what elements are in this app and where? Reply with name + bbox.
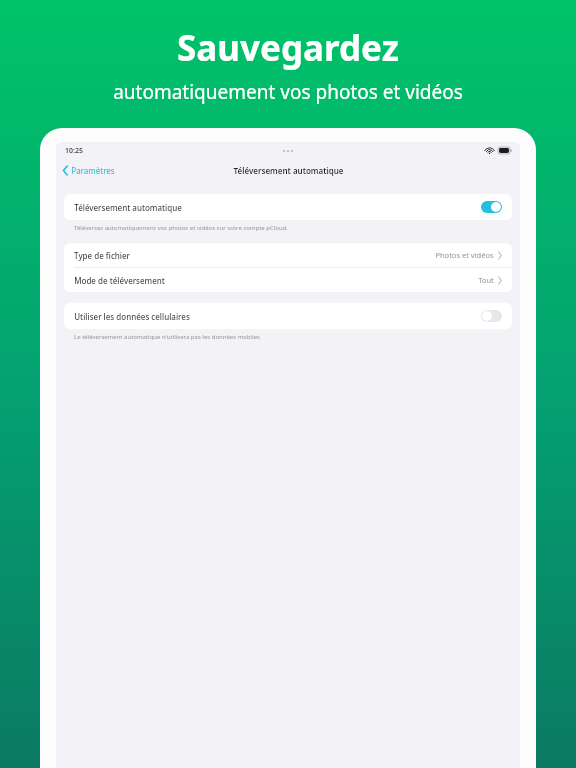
- staticText: Téléversez automatiquement vos photos et…: [74, 224, 288, 232]
- button[interactable]: Activé: [481, 201, 502, 213]
- staticText: Téléversement automatique: [74, 202, 182, 213]
- staticText: Téléversement automatique: [233, 165, 344, 176]
- staticText: Paramètres: [71, 165, 115, 176]
- button[interactable]: Mode de téléversement: [64, 268, 512, 292]
- staticText: automatiquement vos photos et vidéos: [113, 79, 463, 105]
- staticText: Type de fichier: [74, 250, 130, 261]
- button[interactable]: Type de fichier: [64, 243, 512, 267]
- button[interactable]: Désactivé: [481, 310, 502, 322]
- button[interactable]: Utiliser les données cellulaires: [64, 303, 512, 329]
- staticText: Sauvegardez: [177, 24, 399, 72]
- staticText: 10:25: [65, 146, 83, 156]
- staticText: Utiliser les données cellulaires: [74, 311, 190, 322]
- button[interactable]: Paramètres: [56, 163, 121, 178]
- staticText: Mode de téléversement: [74, 275, 165, 286]
- staticText: Tout: [478, 275, 494, 285]
- staticText: Le téléversement automatique n'utilisera…: [74, 333, 260, 341]
- button[interactable]: Téléversement automatique: [64, 194, 512, 220]
- staticText: Photos et vidéos: [435, 250, 494, 260]
